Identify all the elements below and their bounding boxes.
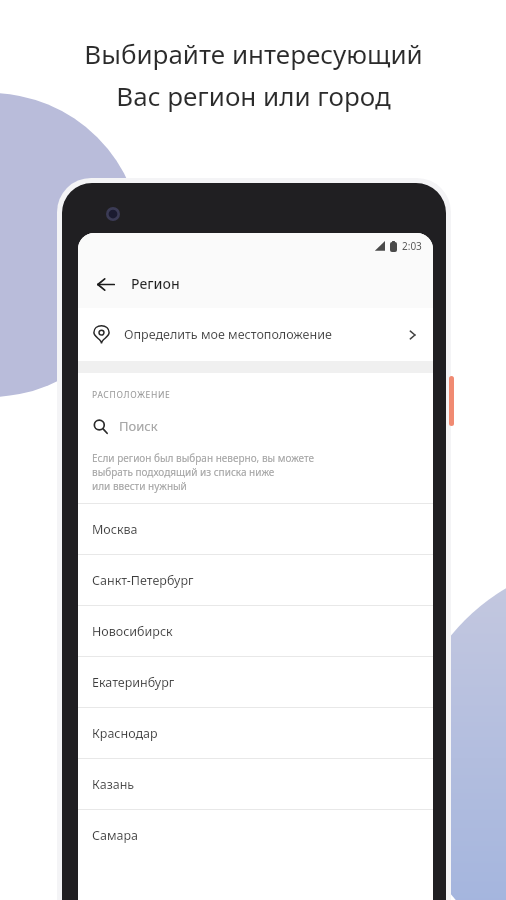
staticText: 2:03 <box>402 239 422 253</box>
staticText: Новосибирск <box>92 623 173 640</box>
staticText: РАСПОЛОЖЕНИЕ <box>92 389 171 401</box>
button[interactable]: Новосибирск <box>78 606 433 656</box>
button[interactable]: Москва <box>78 504 433 554</box>
staticText: Санкт-Петербург <box>92 572 194 589</box>
staticText: Выбирайте интересующий <box>84 36 423 71</box>
staticText: Вас регион или город <box>116 78 391 113</box>
button[interactable]: Санкт-Петербург <box>78 555 433 605</box>
button[interactable]: Казань <box>78 759 433 809</box>
button[interactable]: Краснодар <box>78 708 433 758</box>
button[interactable]: Определить мое местоположение <box>78 308 433 361</box>
staticText: Самара <box>92 827 139 844</box>
button[interactable]: Назад <box>87 266 123 302</box>
staticText: Екатеринбург <box>92 674 175 691</box>
staticText: Определить мое местоположение <box>124 326 332 343</box>
button[interactable]: Екатеринбург <box>78 657 433 707</box>
staticText: Поиск <box>119 417 158 435</box>
staticText: Если регион был выбран неверно, вы может… <box>92 451 314 493</box>
staticText: Казань <box>92 776 135 793</box>
button[interactable]: Поиск <box>78 413 433 439</box>
button[interactable]: Самара <box>78 810 433 860</box>
staticText: Москва <box>92 521 138 538</box>
staticText: Регион <box>131 274 180 293</box>
staticText: Краснодар <box>92 725 158 742</box>
